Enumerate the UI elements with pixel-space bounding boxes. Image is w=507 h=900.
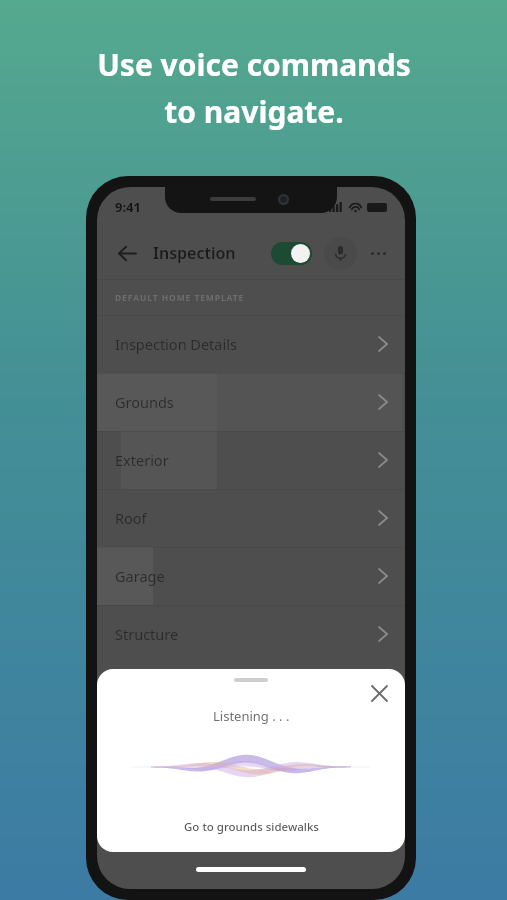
staticText: Roof — [115, 508, 147, 528]
button[interactable]: More options — [363, 238, 393, 268]
staticText: Grounds — [115, 392, 174, 412]
staticText: Structure — [115, 624, 179, 644]
staticText: 9:41 — [115, 198, 141, 216]
button[interactable]: Exterior — [97, 431, 405, 489]
staticText: DEFAULT HOME TEMPLATE — [115, 292, 245, 304]
staticText: Listening . . . — [213, 707, 290, 725]
button[interactable]: Grounds — [97, 373, 405, 431]
staticText: Go to grounds sidewalks — [184, 819, 319, 835]
button[interactable]: Back — [109, 235, 145, 271]
button[interactable]: Close — [363, 677, 395, 709]
staticText: to navigate. — [164, 91, 344, 132]
button[interactable]: Voice input — [324, 237, 357, 270]
button[interactable]: Inspection Details — [97, 315, 405, 373]
staticText: Exterior — [115, 450, 169, 470]
staticText: Garage — [115, 566, 165, 586]
button[interactable]: Garage — [97, 547, 405, 605]
button[interactable]: Toggle — [271, 242, 312, 265]
staticText: Inspection — [153, 242, 236, 264]
button[interactable]: Roof — [97, 489, 405, 547]
button[interactable]: Structure — [97, 605, 405, 663]
staticText: Use voice commands — [97, 44, 411, 85]
staticText: Inspection Details — [115, 334, 237, 354]
